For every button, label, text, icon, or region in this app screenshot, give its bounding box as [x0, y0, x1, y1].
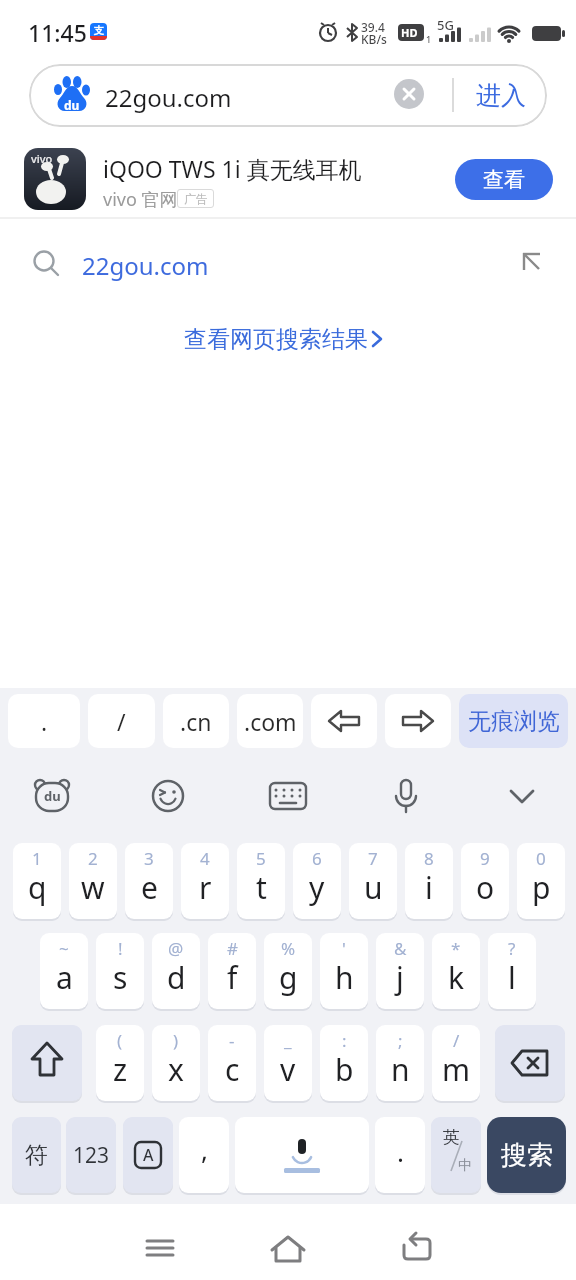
button[interactable]: [12, 1025, 82, 1101]
button[interactable]: (: [96, 1025, 144, 1101]
staticText: h: [335, 957, 354, 998]
staticText: 3: [144, 847, 154, 870]
button[interactable]: ;: [376, 1025, 424, 1101]
button[interactable]: ': [320, 933, 368, 1009]
button[interactable]: [394, 79, 424, 109]
button[interactable]: 2: [69, 843, 117, 919]
staticText: k: [448, 957, 465, 998]
button[interactable]: ,: [179, 1117, 229, 1193]
button[interactable]: 6: [293, 843, 341, 919]
button[interactable]: ): [152, 1025, 200, 1101]
button[interactable]: 查看: [455, 159, 553, 200]
staticText: 8: [424, 847, 434, 870]
button[interactable]: [311, 694, 377, 748]
button[interactable]: 123: [66, 1117, 116, 1193]
staticText: v: [280, 1049, 296, 1090]
staticText: z: [113, 1049, 128, 1090]
button[interactable]: 英: [431, 1117, 481, 1193]
button[interactable]: %: [264, 933, 312, 1009]
button[interactable]: [22, 766, 82, 826]
button[interactable]: 22gou.com: [0, 228, 576, 298]
staticText: 7: [368, 847, 378, 870]
button[interactable]: 进入: [454, 64, 547, 127]
button[interactable]: 7: [349, 843, 397, 919]
button[interactable]: @: [152, 933, 200, 1009]
staticText: 进入: [476, 80, 526, 111]
button[interactable]: 无痕浏览: [459, 694, 568, 748]
button[interactable]: ~: [40, 933, 88, 1009]
staticText: HD: [401, 25, 418, 40]
staticText: &: [394, 937, 407, 960]
staticText: 1: [426, 33, 432, 45]
button[interactable]: _: [264, 1025, 312, 1101]
staticText: 英: [443, 1127, 460, 1148]
button[interactable]: !: [96, 933, 144, 1009]
staticText: y: [309, 867, 325, 908]
button[interactable]: 4: [181, 843, 229, 919]
staticText: c: [225, 1049, 240, 1090]
button[interactable]: 9: [461, 843, 509, 919]
button[interactable]: :: [320, 1025, 368, 1101]
staticText: /: [117, 706, 126, 737]
staticText: (: [117, 1029, 123, 1052]
staticText: 搜索: [501, 1139, 553, 1172]
button[interactable]: du: [29, 64, 547, 127]
button[interactable]: *: [432, 933, 480, 1009]
button[interactable]: [258, 1218, 318, 1278]
staticText: j: [396, 957, 404, 998]
button[interactable]: /: [88, 694, 155, 748]
button[interactable]: 8: [405, 843, 453, 919]
staticText: r: [199, 867, 212, 908]
button[interactable]: 搜索: [487, 1117, 566, 1193]
staticText: b: [335, 1049, 354, 1090]
button[interactable]: 1: [13, 843, 61, 919]
button[interactable]: [138, 766, 198, 826]
button[interactable]: -: [208, 1025, 256, 1101]
staticText: m: [442, 1049, 471, 1090]
staticText: -: [229, 1029, 235, 1052]
staticText: d: [167, 957, 186, 998]
staticText: 2: [88, 847, 98, 870]
staticText: t: [256, 867, 267, 908]
staticText: /: [453, 1029, 460, 1052]
button[interactable]: A: [123, 1117, 173, 1193]
button[interactable]: [235, 1117, 369, 1193]
button[interactable]: .: [375, 1117, 425, 1193]
button[interactable]: [258, 766, 318, 826]
button[interactable]: 查看网页搜索结果: [184, 322, 386, 356]
button[interactable]: ?: [488, 933, 536, 1009]
button[interactable]: .com: [237, 694, 303, 748]
button[interactable]: [376, 766, 436, 826]
button[interactable]: .: [8, 694, 80, 748]
button[interactable]: .cn: [163, 694, 229, 748]
button[interactable]: [386, 1218, 446, 1278]
staticText: ?: [508, 937, 516, 960]
button[interactable]: [495, 1025, 565, 1101]
staticText: p: [532, 867, 551, 908]
staticText: vivo 官网: [103, 187, 178, 212]
button[interactable]: #: [208, 933, 256, 1009]
button[interactable]: 5: [237, 843, 285, 919]
staticText: ,: [201, 1132, 208, 1167]
staticText: .: [41, 706, 48, 737]
button[interactable]: [385, 694, 451, 748]
staticText: ~: [59, 937, 69, 960]
staticText: 11:45: [28, 17, 87, 48]
staticText: u: [364, 867, 383, 908]
button[interactable]: 符: [12, 1117, 61, 1193]
staticText: 无痕浏览: [468, 707, 560, 736]
button[interactable]: [130, 1218, 190, 1278]
button[interactable]: 0: [517, 843, 565, 919]
staticText: 123: [73, 1141, 110, 1170]
button[interactable]: [492, 766, 552, 826]
staticText: .: [397, 1134, 404, 1169]
button[interactable]: vivo: [0, 140, 576, 218]
staticText: 5: [256, 847, 266, 870]
button[interactable]: &: [376, 933, 424, 1009]
button[interactable]: 3: [125, 843, 173, 919]
staticText: _: [284, 1029, 292, 1052]
staticText: i: [425, 867, 433, 908]
button[interactable]: /: [432, 1025, 480, 1101]
staticText: 9: [480, 847, 490, 870]
staticText: a: [56, 957, 73, 998]
